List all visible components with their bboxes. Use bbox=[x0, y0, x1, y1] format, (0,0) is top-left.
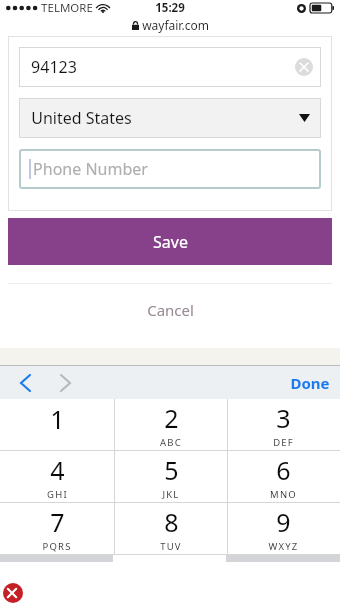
button[interactable]: Next field bbox=[52, 370, 78, 396]
button[interactable]: Cancel bbox=[0, 284, 340, 335]
button[interactable]: United States bbox=[19, 98, 321, 138]
staticText: DEF bbox=[273, 436, 294, 449]
staticText: Save bbox=[153, 231, 188, 253]
button[interactable]: 6 bbox=[227, 451, 340, 502]
button[interactable]: 2 bbox=[114, 399, 227, 450]
button[interactable]: 94123 bbox=[19, 47, 321, 87]
staticText: Done bbox=[290, 373, 330, 393]
staticText: Phone Number bbox=[33, 158, 148, 180]
staticText: 4 bbox=[50, 453, 65, 487]
staticText: TELMORE bbox=[41, 0, 93, 16]
staticText: 2 bbox=[164, 401, 179, 435]
staticText: Cancel bbox=[147, 300, 194, 320]
button[interactable]: Phone Number bbox=[19, 149, 321, 189]
staticText: 1 bbox=[50, 402, 65, 436]
button[interactable]: 8 bbox=[114, 503, 227, 554]
button[interactable]: 4 bbox=[0, 451, 114, 502]
button[interactable]: 3 bbox=[227, 399, 340, 450]
button[interactable]: Previous field bbox=[12, 370, 38, 396]
staticText: wayfair.com bbox=[142, 17, 209, 33]
button[interactable]: Close bbox=[2, 583, 24, 603]
staticText: TUV bbox=[160, 540, 182, 553]
staticText: PQRS bbox=[42, 540, 72, 553]
staticText: 9 bbox=[276, 505, 291, 539]
staticText: 7 bbox=[50, 505, 65, 539]
staticText: WXYZ bbox=[268, 540, 299, 553]
staticText: 6 bbox=[276, 453, 291, 487]
staticText: 3 bbox=[276, 401, 291, 435]
staticText: United States bbox=[31, 107, 132, 129]
button[interactable]: Save bbox=[8, 218, 332, 265]
button[interactable]: 9 bbox=[227, 503, 340, 554]
staticText: 15:29 bbox=[155, 0, 185, 16]
staticText: GHI bbox=[47, 488, 68, 501]
button[interactable]: Done bbox=[290, 366, 330, 399]
button[interactable]: 5 bbox=[114, 451, 227, 502]
staticText: JKL bbox=[162, 488, 180, 501]
staticText: ABC bbox=[160, 436, 182, 449]
button[interactable]: 1 bbox=[0, 399, 114, 450]
staticText: 94123 bbox=[31, 56, 77, 78]
button[interactable]: Clear text bbox=[295, 58, 313, 76]
staticText: 5 bbox=[164, 453, 179, 487]
staticText: MNO bbox=[270, 488, 297, 501]
staticText: 8 bbox=[164, 505, 179, 539]
button[interactable]: 7 bbox=[0, 503, 114, 554]
